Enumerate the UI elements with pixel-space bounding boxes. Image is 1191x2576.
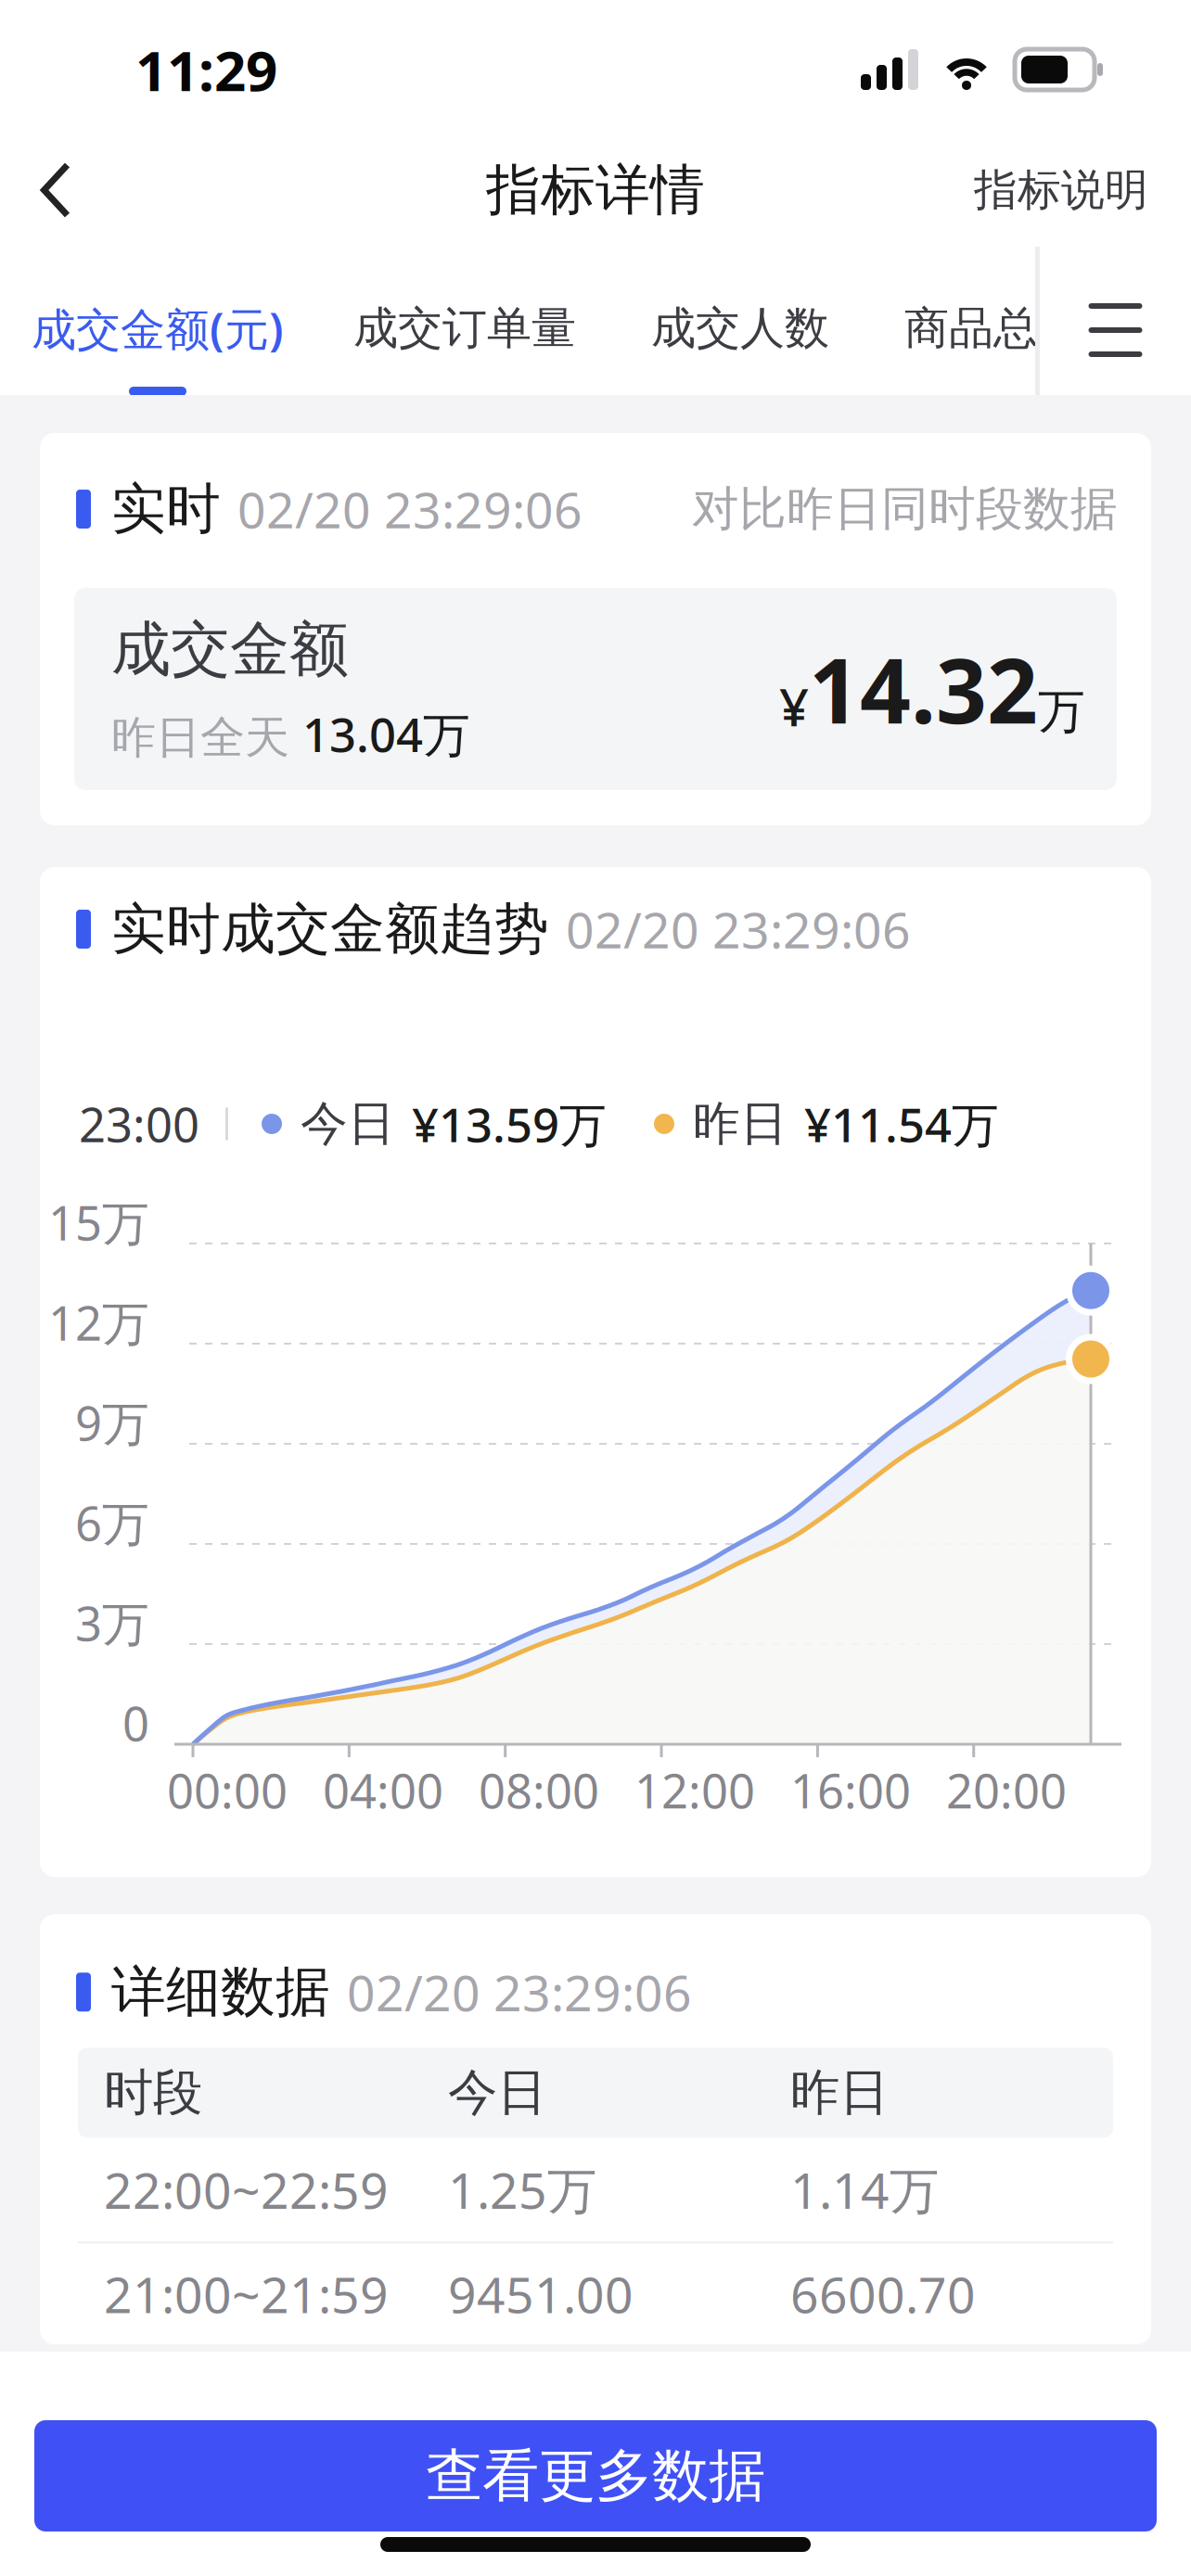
staticText: ¥11.54万 [804,1093,999,1155]
staticText: 指标详情 [486,157,705,224]
staticText: 6600.70 [790,2261,976,2327]
button[interactable]: 返回 [0,132,111,241]
staticText: ¥13.59万 [412,1093,607,1155]
staticText: 1.25万 [448,2157,596,2222]
staticText: 0 [122,1692,149,1754]
button[interactable]: 成交金额(元) [0,247,353,395]
staticText: 00:00 [167,1759,288,1821]
staticText: 11:29 [135,33,277,107]
staticText: 15万 [48,1191,149,1253]
staticText: 对比昨日同时段数据 [692,480,1118,538]
button[interactable]: 商品总访 [904,247,1082,395]
staticText: 指标说明 [974,163,1148,217]
button[interactable]: 成交订单量 [353,247,651,395]
staticText: 今日 [301,1095,395,1153]
staticText: 22:00~22:59 [104,2157,389,2222]
staticText: 23:00 [79,1093,199,1155]
staticText: 成交人数 [651,301,829,356]
staticText: 08:00 [479,1759,599,1821]
staticText: 实时成交金额趋势 [111,896,549,963]
staticText: 6万 [75,1491,149,1554]
staticText: 成交金额(元) [32,299,284,358]
staticText: 今日 [448,2062,546,2123]
button[interactable]: 成交人数 [651,247,904,395]
staticText: 16:00 [790,1759,911,1821]
staticText: 12万 [48,1291,149,1354]
button[interactable]: 指标说明 [974,132,1191,241]
staticText: 02/20 23:29:06 [347,1959,692,2025]
staticText: 昨日 [790,2062,889,2123]
staticText: 成交金额 [111,613,349,686]
staticText: 昨日 [693,1095,788,1153]
button[interactable]: 查看更多数据 [34,2420,1157,2531]
staticText: 04:00 [323,1759,443,1821]
staticText: 12:00 [634,1759,755,1821]
staticText: 1.14万 [790,2157,939,2222]
staticText: 万 [1038,683,1085,741]
staticText: 详细数据 [111,1959,330,2026]
staticText: 02/20 23:29:06 [237,476,583,542]
button[interactable]: 更多指标 [1040,247,1191,395]
staticText: 13.04万 [302,703,470,765]
staticText: 9万 [75,1391,149,1454]
staticText: 商品总访 [904,301,1082,356]
staticText: 时段 [104,2062,202,2123]
staticText: 3万 [75,1592,149,1654]
staticText: 02/20 23:29:06 [566,896,911,962]
staticText: 实时 [111,476,221,543]
staticText: 14.32 [809,630,1038,748]
staticText: 昨日全天 [111,710,289,765]
staticText: 查看更多数据 [426,2441,765,2511]
staticText: 21:00~21:59 [104,2261,389,2327]
staticText: 9451.00 [448,2261,634,2327]
staticText: 成交订单量 [353,301,576,356]
staticText: ¥ [779,672,809,741]
staticText: 20:00 [946,1759,1067,1821]
